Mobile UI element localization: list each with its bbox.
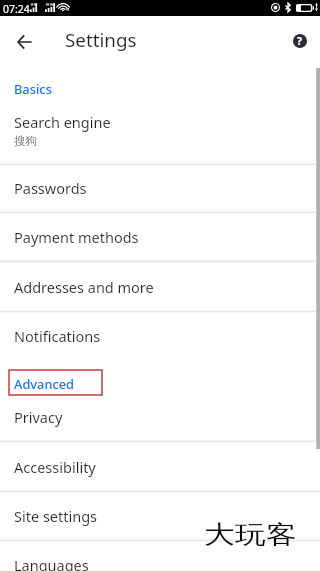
staticText: Advanced [14,375,74,392]
staticText: 大玩客 [204,519,297,550]
staticText: Privacy [14,407,63,427]
staticText: ? [297,34,303,48]
staticText: Languages [14,555,89,571]
staticText: Accessibility [14,457,96,477]
staticText: 搜狗 [14,134,37,148]
button[interactable]: Site settings [0,491,320,540]
staticText: Basics [14,80,52,97]
button[interactable]: Search engine [0,98,320,164]
button[interactable]: Notifications [0,311,320,360]
staticText: Settings [65,27,137,53]
button[interactable]: Privacy [0,392,320,441]
staticText: Addresses and more [14,277,154,297]
button[interactable]: Passwords [0,163,320,212]
button[interactable]: Addresses and more [0,262,320,311]
staticText: Notifications [14,326,101,346]
button[interactable]: Navigate up [7,24,42,59]
staticText: Search engine [14,112,111,132]
staticText: Payment methods [14,227,139,247]
button[interactable]: Payment methods [0,212,320,261]
button[interactable]: Languages [0,540,320,571]
staticText: 07:24 [3,2,30,16]
button[interactable]: Help and feedback [283,24,316,57]
staticText: Site settings [14,506,98,526]
button[interactable]: Accessibility [0,442,320,491]
staticText: Passwords [14,178,87,198]
